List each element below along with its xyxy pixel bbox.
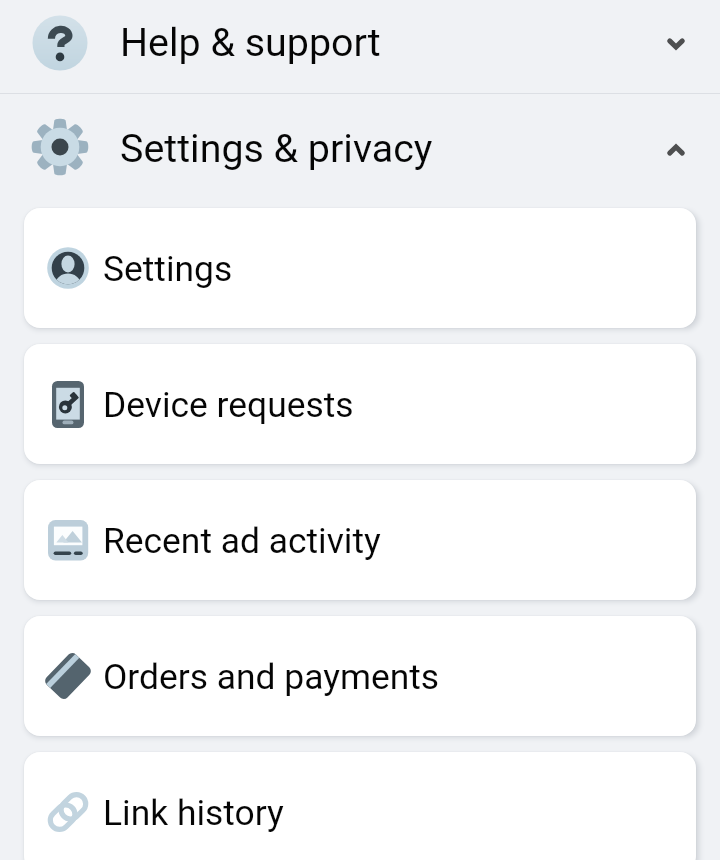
staticText: Orders and payments — [103, 656, 440, 697]
button[interactable]: Recent ad activity — [24, 480, 696, 600]
button[interactable]: Orders and payments — [24, 616, 696, 736]
button[interactable]: Link history — [24, 752, 696, 860]
staticText: Device requests — [103, 384, 354, 425]
button[interactable]: Settings — [24, 208, 696, 328]
staticText: Link history — [103, 792, 284, 833]
other: Collapse section — [664, 135, 688, 159]
button[interactable]: Settings & privacy — [0, 94, 720, 199]
other: Expand section — [664, 29, 688, 53]
staticText: Settings — [103, 248, 233, 289]
staticText: Recent ad activity — [103, 520, 381, 561]
button[interactable]: Help & support — [0, 0, 720, 93]
button[interactable]: Device requests — [24, 344, 696, 464]
staticText: Help & support — [120, 19, 381, 65]
staticText: Settings & privacy — [120, 125, 433, 171]
